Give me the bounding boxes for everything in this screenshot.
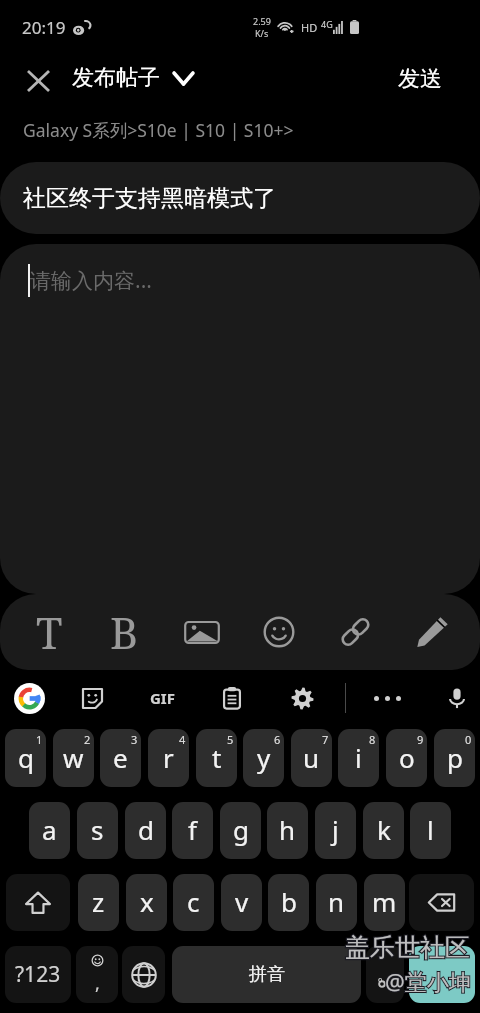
- staticText: 请输入内容...: [30, 266, 152, 295]
- staticText: 1: [36, 732, 43, 747]
- button[interactable]: Draw: [405, 605, 459, 659]
- staticText: @堂小坤: [385, 966, 471, 996]
- button[interactable]: 社区终于支持黑暗模式了: [0, 162, 480, 234]
- button[interactable]: Settings: [277, 673, 327, 723]
- button[interactable]: h: [267, 802, 308, 859]
- staticText: ?123: [15, 960, 61, 989]
- button[interactable]: Change language: [122, 946, 165, 1003]
- staticText: f: [188, 812, 197, 847]
- button[interactable]: w: [53, 729, 94, 787]
- button[interactable]: f: [172, 802, 213, 859]
- staticText: l: [427, 812, 434, 847]
- button[interactable]: 请输入内容...: [0, 244, 480, 594]
- button[interactable]: u: [291, 729, 332, 787]
- button[interactable]: Insert image: [175, 605, 229, 659]
- button[interactable]: i: [338, 729, 379, 787]
- button[interactable]: v: [221, 874, 262, 931]
- staticText: 5: [227, 732, 234, 747]
- staticText: i: [355, 740, 362, 775]
- button[interactable]: j: [315, 802, 356, 859]
- staticText: o: [399, 740, 415, 775]
- button[interactable]: Bold: [97, 605, 151, 659]
- staticText: 7: [322, 732, 329, 747]
- staticText: 盖乐世社区: [345, 932, 470, 963]
- staticText: y: [257, 740, 271, 775]
- button[interactable]: a: [29, 802, 70, 859]
- button[interactable]: e: [100, 729, 141, 787]
- button[interactable]: Period: [366, 946, 404, 1003]
- staticText: q: [18, 740, 34, 775]
- staticText: 2.59: [253, 15, 271, 27]
- staticText: 20:19: [22, 16, 66, 39]
- button[interactable]: z: [78, 874, 119, 931]
- button[interactable]: y: [243, 729, 284, 787]
- button[interactable]: d: [125, 802, 166, 859]
- staticText: e: [113, 740, 128, 775]
- button[interactable]: o: [386, 729, 427, 787]
- staticText: 。: [377, 964, 394, 985]
- button[interactable]: Enter: [409, 946, 475, 1003]
- button[interactable]: g: [220, 802, 261, 859]
- button[interactable]: Galaxy S系列>S10e | S10 | S10+>: [0, 112, 480, 152]
- button[interactable]: t: [196, 729, 237, 787]
- button[interactable]: 发布帖子: [66, 59, 201, 103]
- button[interactable]: Symbols: [5, 946, 71, 1003]
- button[interactable]: r: [148, 729, 189, 787]
- staticText: j: [332, 812, 339, 847]
- button[interactable]: c: [173, 874, 214, 931]
- button[interactable]: Backspace: [409, 874, 474, 931]
- button[interactable]: GIF: [137, 673, 187, 723]
- staticText: 拼音: [249, 963, 285, 986]
- button[interactable]: More options: [362, 673, 412, 723]
- staticText: B: [110, 603, 139, 657]
- button[interactable]: x: [126, 874, 167, 931]
- button[interactable]: 拼音: [172, 946, 361, 1003]
- button[interactable]: Text style: [22, 605, 76, 659]
- staticText: r: [163, 740, 174, 775]
- staticText: 8: [369, 732, 376, 747]
- staticText: 6: [274, 732, 281, 747]
- staticText: v: [235, 884, 249, 919]
- button[interactable]: Emoji and comma: [76, 946, 118, 1003]
- staticText: 2: [84, 732, 91, 747]
- button[interactable]: Google: [4, 673, 54, 723]
- button[interactable]: 发送: [360, 55, 480, 107]
- staticText: u: [303, 740, 320, 775]
- staticText: Galaxy S系列>S10e | S10 | S10+>: [23, 118, 294, 142]
- staticText: m: [372, 884, 397, 919]
- button[interactable]: k: [363, 802, 404, 859]
- button[interactable]: n: [316, 874, 357, 931]
- staticText: s: [91, 812, 104, 847]
- staticText: 发送: [398, 65, 442, 93]
- button[interactable]: Insert link: [328, 605, 382, 659]
- button[interactable]: p: [434, 729, 475, 787]
- button[interactable]: Stickers: [67, 673, 117, 723]
- staticText: p: [447, 740, 463, 775]
- staticText: 盖乐世社区: [345, 932, 470, 963]
- button[interactable]: Voice input: [432, 673, 480, 723]
- staticText: a: [42, 812, 57, 847]
- staticText: 3: [131, 732, 138, 747]
- button[interactable]: Insert emoji: [252, 605, 306, 659]
- button[interactable]: m: [364, 874, 405, 931]
- staticText: T: [36, 603, 63, 657]
- button[interactable]: q: [5, 729, 46, 787]
- button[interactable]: s: [77, 802, 118, 859]
- staticText: HD: [301, 20, 318, 35]
- button[interactable]: Shift: [6, 874, 70, 931]
- staticText: 社区终于支持黑暗模式了: [23, 184, 276, 213]
- staticText: K/s: [255, 27, 269, 39]
- staticText: GIF: [150, 688, 175, 708]
- button[interactable]: l: [410, 802, 451, 859]
- staticText: 0: [465, 732, 472, 747]
- staticText: 发布帖子: [72, 64, 160, 92]
- button[interactable]: b: [268, 874, 309, 931]
- staticText: d: [138, 812, 154, 847]
- staticText: z: [92, 884, 105, 919]
- staticText: x: [140, 884, 154, 919]
- staticText: @堂小坤: [385, 966, 471, 996]
- staticText: t: [212, 740, 222, 775]
- button[interactable]: Close: [10, 53, 66, 109]
- button[interactable]: Clipboard: [207, 673, 257, 723]
- staticText: ,: [95, 971, 100, 996]
